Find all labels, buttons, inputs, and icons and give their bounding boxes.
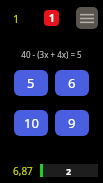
staticText: 40 - (3x + 4x) = 5 [21, 49, 82, 60]
staticText: 6,87 [13, 164, 33, 178]
button[interactable]: 6 [55, 70, 89, 96]
staticText: 1 [49, 11, 55, 25]
staticText: 6 [68, 74, 76, 92]
staticText: 9 [68, 114, 76, 132]
button[interactable]: Menu [76, 7, 98, 29]
button[interactable]: 5 [14, 70, 48, 96]
button[interactable]: 2 [40, 164, 98, 177]
staticText: 10 [24, 114, 39, 132]
staticText: 5 [27, 74, 35, 92]
button[interactable]: 1 [44, 10, 59, 26]
staticText: 1 [13, 11, 20, 26]
button[interactable]: 9 [55, 110, 89, 136]
staticText: 2 [66, 165, 72, 177]
button[interactable]: 10 [14, 110, 48, 136]
button[interactable]: 1 [9, 10, 23, 26]
